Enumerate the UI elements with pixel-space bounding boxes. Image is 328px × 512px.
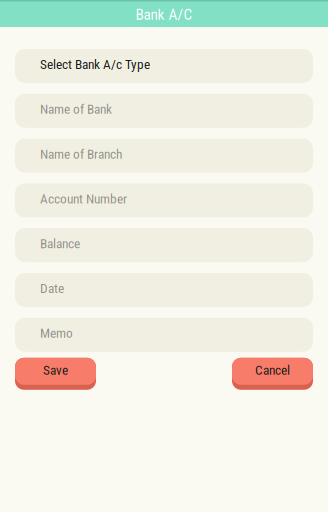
staticText: Name of Bank bbox=[40, 101, 112, 117]
button[interactable]: Name of Bank bbox=[15, 94, 313, 128]
staticText: Balance bbox=[40, 236, 80, 251]
staticText: Name of Branch bbox=[40, 146, 122, 162]
staticText: Cancel bbox=[255, 362, 290, 378]
button[interactable]: Memo bbox=[15, 318, 313, 352]
staticText: Memo bbox=[40, 325, 73, 341]
button[interactable]: Select Bank A/c Type bbox=[15, 49, 313, 83]
staticText: Bank A/C bbox=[135, 5, 192, 23]
button[interactable]: Name of Branch bbox=[15, 139, 313, 173]
staticText: Select Bank A/c Type bbox=[40, 57, 150, 72]
button[interactable]: Date bbox=[15, 273, 313, 307]
button[interactable]: Save bbox=[15, 358, 96, 390]
button[interactable]: Balance bbox=[15, 228, 313, 262]
button[interactable]: Cancel bbox=[232, 358, 313, 390]
staticText: Date bbox=[40, 281, 64, 296]
button[interactable]: Account Number bbox=[15, 183, 313, 217]
staticText: Save bbox=[43, 362, 68, 378]
staticText: Account Number bbox=[40, 191, 127, 207]
